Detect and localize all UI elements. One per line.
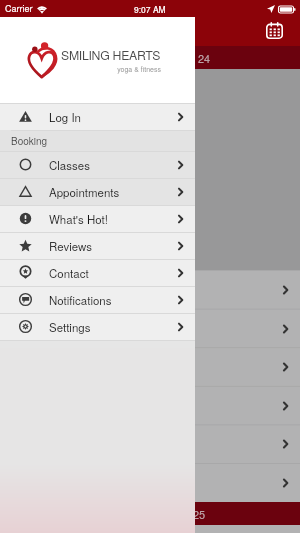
- staticText: 9:07 AM: [134, 3, 166, 15]
- button[interactable]: [0, 386, 300, 425]
- staticText: Notifications: [49, 292, 112, 308]
- button[interactable]: Settings: [0, 313, 195, 340]
- button[interactable]: [0, 309, 300, 348]
- button[interactable]: Classes: [0, 151, 195, 178]
- staticText: 24: [198, 50, 211, 66]
- staticText: Carrier: [5, 2, 33, 15]
- staticText: Log In: [49, 109, 81, 125]
- button[interactable]: Reviews: [0, 232, 195, 259]
- button[interactable]: 25: [0, 502, 300, 525]
- staticText: Classes: [49, 157, 90, 173]
- staticText: SMILING HEARTS: [61, 46, 161, 64]
- staticText: Contact: [49, 265, 89, 281]
- button[interactable]: [0, 463, 300, 502]
- button[interactable]: Log In: [0, 103, 195, 130]
- staticText: yoga & fitness: [117, 64, 161, 74]
- staticText: What's Hot!: [49, 211, 108, 227]
- button[interactable]: [0, 424, 300, 463]
- button[interactable]: Notifications: [0, 286, 195, 313]
- staticText: Settings: [49, 319, 91, 335]
- button[interactable]: [0, 270, 300, 309]
- button[interactable]: 24: [0, 46, 300, 69]
- staticText: 25: [193, 506, 206, 522]
- button[interactable]: Appointments: [0, 178, 195, 205]
- staticText: Appointments: [49, 184, 120, 200]
- button[interactable]: Calendar: [261, 17, 287, 43]
- button[interactable]: Contact: [0, 259, 195, 286]
- staticText: Reviews: [49, 238, 92, 254]
- button[interactable]: [0, 347, 300, 386]
- staticText: Booking: [11, 134, 48, 148]
- button[interactable]: What's Hot!: [0, 205, 195, 232]
